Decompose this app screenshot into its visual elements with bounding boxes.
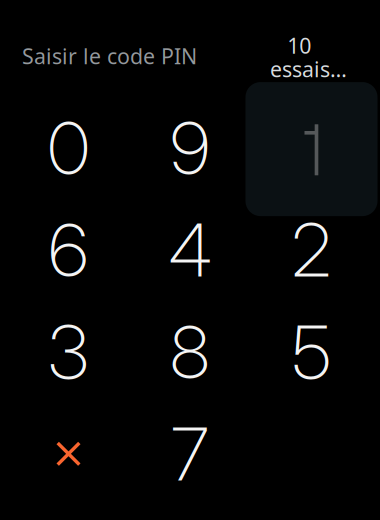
button[interactable]: 4 [129, 199, 251, 301]
button[interactable]: 1 [245, 80, 377, 214]
button[interactable]: 5 [250, 301, 372, 403]
staticText: Saisir le code PIN [22, 42, 197, 70]
staticText: 2 [291, 205, 331, 294]
staticText: essais… [270, 55, 347, 83]
staticText: 3 [48, 307, 89, 396]
staticText: 10 [287, 31, 311, 60]
staticText: 6 [48, 205, 88, 294]
staticText: 8 [170, 307, 210, 396]
staticText: 9 [170, 103, 210, 192]
button[interactable]: 2 [250, 199, 372, 301]
button[interactable]: 6 [7, 199, 129, 301]
button[interactable]: 9 [129, 97, 251, 199]
button[interactable]: Delete [7, 403, 129, 505]
button[interactable]: 7 [129, 403, 251, 505]
staticText: 7 [171, 409, 209, 498]
staticText: 0 [47, 103, 89, 192]
button[interactable]: 0 [7, 97, 129, 199]
staticText: 4 [168, 205, 211, 294]
button[interactable]: 8 [129, 301, 251, 403]
staticText: 5 [292, 307, 331, 396]
button[interactable]: 3 [7, 301, 129, 403]
